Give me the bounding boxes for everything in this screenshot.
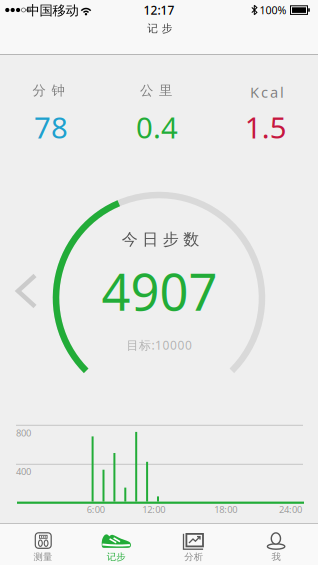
staticText: 800 — [16, 427, 31, 439]
button[interactable]: 分析 — [154, 523, 233, 565]
button[interactable]: 我 — [236, 523, 316, 565]
staticText: 我 — [271, 551, 280, 563]
staticText: 4907 — [101, 257, 217, 325]
staticText: 6:00 — [87, 503, 105, 516]
button[interactable]: 记步 — [76, 523, 156, 565]
staticText: 分钟 — [33, 82, 65, 99]
button[interactable]: 测量 — [3, 523, 82, 565]
staticText: 1.5 — [245, 107, 287, 146]
staticText: 12:17 — [143, 2, 174, 18]
staticText: 公里 — [140, 82, 172, 99]
staticText: 12:00 — [142, 503, 165, 516]
staticText: 400 — [16, 465, 31, 478]
staticText: 0.4 — [136, 107, 178, 146]
staticText: 分析 — [184, 551, 203, 563]
button[interactable] — [14, 271, 38, 311]
staticText: 目标:10000 — [127, 337, 192, 353]
staticText: 记步 — [147, 22, 173, 35]
staticText: 18:00 — [214, 503, 237, 516]
staticText: 中国移动 — [26, 2, 78, 19]
staticText: 记步 — [107, 551, 125, 563]
staticText: 78 — [34, 107, 68, 146]
staticText: 100% — [259, 3, 286, 17]
staticText: 测量 — [33, 551, 52, 563]
staticText: 24:00 — [279, 503, 302, 516]
staticText: Kcal — [250, 82, 284, 102]
staticText: 今日步数 — [122, 229, 199, 249]
